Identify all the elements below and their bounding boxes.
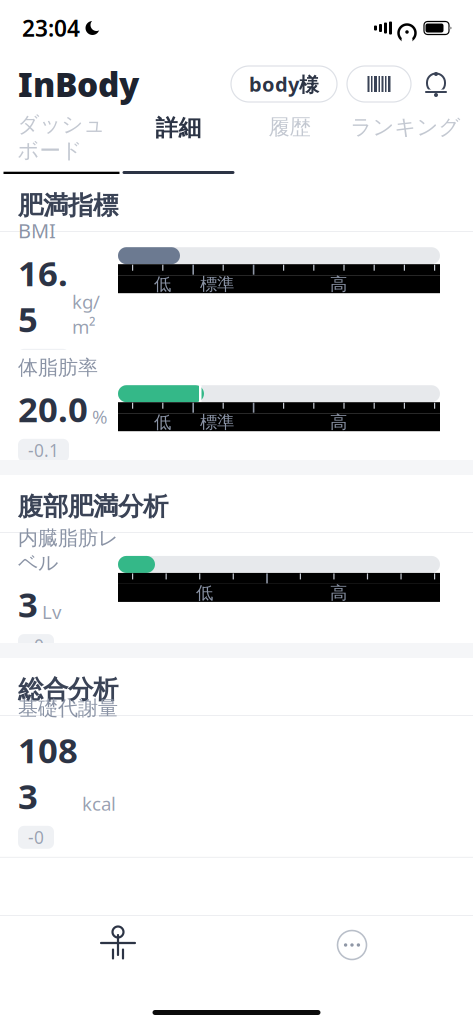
staticText: -0 [28,634,44,657]
button[interactable]: 詳細 [119,112,237,174]
staticText: kcal [82,791,116,816]
button[interactable]: ダッシュボード [3,112,119,174]
staticText: BMI [18,217,56,244]
staticText: -0.0 [28,349,59,372]
button[interactable]: その他 [335,928,369,962]
staticText: 肥満指標 [18,190,118,221]
staticText: InBody [18,62,139,106]
staticText: body様 [249,71,319,97]
staticText: 3 [18,581,38,627]
staticText: 標準 [200,412,234,433]
staticText: 内臓脂肪レベル [18,526,118,575]
staticText: % [92,404,108,429]
staticText: ダッシュボード [17,111,105,164]
staticText: 16.5 [18,250,68,342]
button[interactable]: ランキング [341,112,469,174]
staticText: 基礎代謝量 [18,696,118,721]
staticText: kg/m² [72,289,100,339]
staticText: 20.0 [18,386,88,432]
staticText: 低 [154,273,171,295]
button[interactable]: 通知 [417,65,455,103]
staticText: 体脂肪率 [18,355,98,380]
staticText: 履歴 [268,114,310,140]
staticText: 高 [330,582,347,604]
staticText: -0 [28,826,44,849]
staticText: 標準 [200,273,234,295]
staticText: -0.1 [28,439,59,462]
staticText: Lv [42,599,61,624]
button[interactable]: 履歴 [237,112,341,174]
staticText: 腹部肥満分析 [18,491,168,522]
staticText: 低 [196,582,213,604]
staticText: 高 [330,412,347,433]
staticText: ランキング [350,114,460,140]
staticText: 低 [154,412,171,433]
staticText: 1083 [18,727,78,819]
staticText: 詳細 [155,114,201,142]
staticText: 総合分析 [18,674,118,705]
button[interactable]: バーコード [347,66,411,102]
button[interactable]: 体組成 [98,925,138,965]
button[interactable]: body様 [231,66,337,102]
staticText: 高 [330,273,347,295]
staticText: 23:04 [22,13,80,43]
